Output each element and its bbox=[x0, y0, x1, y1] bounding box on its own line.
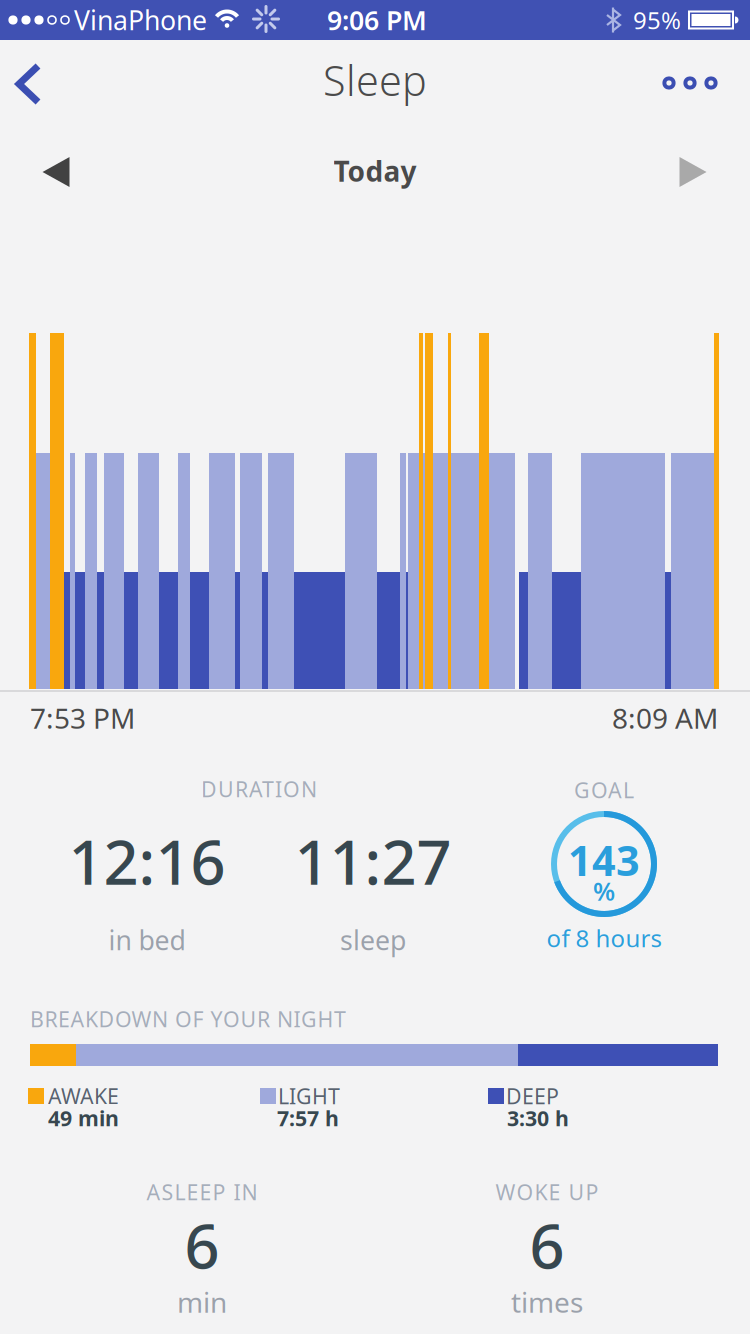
button[interactable]: Next day bbox=[679, 157, 706, 187]
staticText: Sleep bbox=[323, 53, 427, 107]
staticText: 6 bbox=[184, 1204, 219, 1286]
staticText: 9:06 PM bbox=[327, 2, 427, 38]
staticText: 12:16 bbox=[68, 820, 225, 902]
staticText: 8:09 AM bbox=[612, 699, 718, 737]
staticText: 11:27 bbox=[294, 820, 451, 902]
staticText: WOKE UP bbox=[495, 1178, 598, 1206]
button[interactable]: More bbox=[662, 75, 718, 91]
staticText: of 8 hours bbox=[546, 922, 661, 954]
staticText: DURATION bbox=[201, 775, 317, 803]
staticText: GOAL bbox=[574, 776, 634, 804]
staticText: 7:53 PM bbox=[30, 699, 135, 737]
staticText: 6 bbox=[529, 1204, 564, 1286]
button[interactable]: Back bbox=[12, 60, 46, 108]
staticText: % bbox=[593, 874, 615, 908]
staticText: AWAKE bbox=[48, 1082, 119, 1110]
staticText: BREAKDOWN OF YOUR NIGHT bbox=[30, 1005, 346, 1033]
staticText: min bbox=[177, 1283, 227, 1321]
staticText: 49 min bbox=[48, 1104, 119, 1132]
button[interactable]: Previous day bbox=[42, 157, 69, 187]
staticText: LIGHT bbox=[278, 1082, 340, 1110]
staticText: in bed bbox=[108, 922, 185, 958]
staticText: 95% bbox=[633, 4, 681, 36]
staticText: sleep bbox=[340, 922, 406, 958]
staticText: VinaPhone bbox=[74, 2, 207, 38]
staticText: DEEP bbox=[506, 1082, 559, 1110]
staticText: 7:57 h bbox=[277, 1104, 339, 1132]
staticText: Today bbox=[333, 152, 416, 190]
staticText: 3:30 h bbox=[507, 1104, 569, 1132]
staticText: ASLEEP IN bbox=[146, 1178, 257, 1206]
staticText: 143 bbox=[568, 833, 640, 887]
staticText: times bbox=[511, 1283, 583, 1321]
